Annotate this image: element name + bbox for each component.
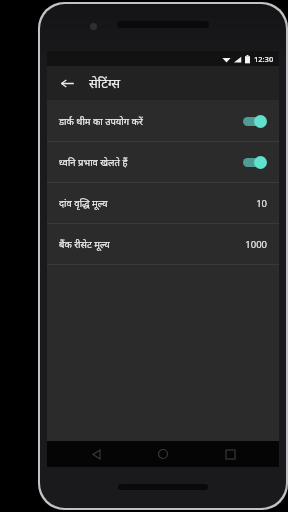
staticText: बैंक रीसेट मूल्य	[59, 238, 245, 251]
button[interactable]: बैंक रीसेट मूल्य	[47, 224, 279, 264]
button[interactable]: डार्क थीम का उपयोग करें	[47, 101, 279, 141]
staticText: डार्क थीम का उपयोग करें	[59, 115, 241, 128]
button[interactable]: Home	[145, 441, 181, 467]
button[interactable]: Back	[53, 69, 81, 97]
button[interactable]: Back	[78, 441, 114, 467]
staticText: 12:30	[254, 54, 274, 64]
button[interactable]: ध्वनि प्रभाव खेलते हैं	[47, 142, 279, 182]
staticText: सेटिंग्स	[89, 74, 121, 92]
staticText: ध्वनि प्रभाव खेलते हैं	[59, 156, 241, 169]
staticText: 10	[256, 197, 267, 210]
staticText: 1000	[245, 238, 267, 251]
button[interactable]: दांव वृद्धि मूल्य	[47, 183, 279, 223]
button[interactable]: Recents	[212, 441, 248, 467]
staticText: दांव वृद्धि मूल्य	[59, 197, 256, 210]
